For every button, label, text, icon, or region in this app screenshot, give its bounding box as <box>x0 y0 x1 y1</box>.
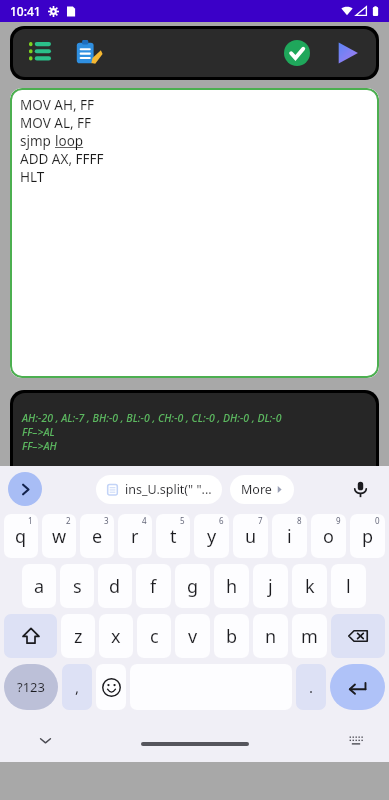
staticText: e <box>92 524 103 549</box>
staticText: x <box>111 624 121 649</box>
button[interactable] <box>331 614 385 658</box>
staticText: 1 <box>28 515 33 526</box>
button[interactable] <box>4 614 57 658</box>
button[interactable] <box>96 664 126 710</box>
button[interactable]: k <box>292 564 327 608</box>
button[interactable]: i <box>272 514 307 558</box>
other: Shift <box>2 614 59 658</box>
button[interactable]: h <box>214 564 249 608</box>
button[interactable]: m <box>292 614 327 658</box>
staticText: . <box>309 677 314 697</box>
staticText: MOV AH, FF <box>20 96 95 114</box>
button[interactable]: Instruction list <box>23 36 57 70</box>
staticText: p <box>362 524 374 549</box>
button[interactable]: y <box>194 514 229 558</box>
button[interactable]: o <box>311 514 346 558</box>
staticText: l <box>346 574 351 599</box>
button[interactable]: n <box>253 614 288 658</box>
other: Backspace <box>329 614 387 658</box>
staticText: w <box>52 524 67 549</box>
button[interactable]: x <box>99 614 133 658</box>
staticText: 4 <box>142 515 147 526</box>
button[interactable]: Run <box>328 34 366 72</box>
button[interactable]: AH:-20 , AL:-7 , BH:-0 , BL:-0 , CH:-0 ,… <box>22 411 376 466</box>
button[interactable]: d <box>98 564 132 608</box>
button[interactable]: a <box>22 564 56 608</box>
button[interactable]: g <box>175 564 210 608</box>
button[interactable]: Hide keyboard <box>32 727 58 753</box>
button[interactable]: v <box>175 614 210 658</box>
staticText: v <box>188 624 198 649</box>
staticText: t <box>170 524 177 549</box>
button[interactable]: Change keyboard <box>343 727 369 753</box>
staticText: u <box>245 524 257 549</box>
button[interactable]: e <box>80 514 114 558</box>
button[interactable]: z <box>61 614 95 658</box>
staticText: , <box>75 677 80 697</box>
staticText: 0 <box>375 515 380 526</box>
staticText: c <box>150 624 159 649</box>
staticText: 8 <box>297 515 302 526</box>
button[interactable]: t <box>156 514 190 558</box>
button[interactable]: c <box>137 614 171 658</box>
staticText: 6 <box>219 515 224 526</box>
button[interactable]: r <box>118 514 152 558</box>
button[interactable]: Enter <box>330 664 385 710</box>
button[interactable]: u <box>233 514 268 558</box>
button[interactable]: MOV AH, FF <box>20 96 379 378</box>
button[interactable]: Voice input <box>345 474 375 504</box>
staticText: f <box>150 574 157 599</box>
staticText: o <box>323 524 334 549</box>
button[interactable]: p <box>350 514 385 558</box>
button[interactable]: ins_U.split(" "... <box>106 475 212 504</box>
button[interactable]: s <box>60 564 94 608</box>
staticText: n <box>265 624 277 649</box>
staticText: sjmp <box>20 132 55 150</box>
button[interactable]: Expand toolbar <box>8 472 42 506</box>
button[interactable]: w <box>42 514 76 558</box>
staticText: s <box>73 574 82 599</box>
staticText: 3 <box>104 515 109 526</box>
staticText: 7 <box>258 515 263 526</box>
staticText: ?123 <box>17 678 45 696</box>
staticText: y <box>207 524 217 549</box>
staticText: 2 <box>66 515 71 526</box>
staticText: z <box>74 624 83 649</box>
staticText: k <box>305 574 315 599</box>
button[interactable]: More <box>241 475 283 504</box>
staticText: i <box>287 524 292 549</box>
button[interactable]: f <box>136 564 171 608</box>
staticText: g <box>187 574 199 599</box>
staticText: 10:41 <box>10 3 41 19</box>
staticText: More <box>241 481 272 498</box>
button[interactable]: , <box>62 664 92 710</box>
button[interactable]: q <box>4 514 38 558</box>
staticText: b <box>226 624 238 649</box>
staticText: r <box>131 524 139 549</box>
staticText: m <box>301 624 318 649</box>
staticText: HLT <box>20 168 45 186</box>
staticText: a <box>34 574 45 599</box>
button[interactable]: . <box>296 664 326 710</box>
other: Emoji <box>94 664 128 710</box>
button[interactable]: ?123 <box>4 664 58 710</box>
staticText: 5 <box>180 515 185 526</box>
staticText: j <box>268 574 273 599</box>
staticText: ins_U.split(" "... <box>125 481 212 498</box>
button[interactable]: Edit notes <box>69 34 107 72</box>
staticText: FF–>AH <box>22 439 57 453</box>
button[interactable]: l <box>331 564 366 608</box>
staticText: ADD AX, FFFF <box>20 150 104 168</box>
button[interactable]: Assemble <box>278 34 316 72</box>
staticText: AH:-20 , AL:-7 , BH:-0 , BL:-0 , CH:-0 ,… <box>22 411 282 425</box>
staticText: MOV AL, FF <box>20 114 92 132</box>
staticText: d <box>109 574 121 599</box>
button[interactable]: j <box>253 564 288 608</box>
staticText: FF–>AL <box>22 425 55 439</box>
button[interactable]: b <box>214 614 249 658</box>
staticText: 9 <box>336 515 341 526</box>
staticText: h <box>226 574 238 599</box>
staticText: loop <box>55 132 84 150</box>
